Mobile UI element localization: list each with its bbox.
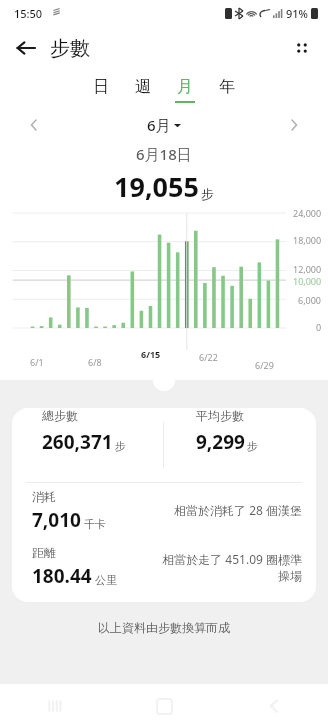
- staticText: 91%: [286, 6, 308, 21]
- staticText: 6/15: [141, 348, 161, 360]
- button[interactable]: 6月: [147, 115, 181, 135]
- button[interactable]: Back: [8, 30, 44, 66]
- staticText: 以上資料由步數換算而成: [0, 620, 328, 635]
- button[interactable]: Previous month: [20, 111, 48, 139]
- staticText: 距離: [32, 545, 56, 560]
- staticText: 0: [316, 321, 322, 333]
- staticText: 週: [135, 77, 151, 97]
- button[interactable]: More options: [284, 30, 320, 66]
- staticText: 步: [115, 439, 126, 453]
- staticText: 6/1: [30, 356, 44, 368]
- staticText: 步數: [50, 36, 90, 61]
- staticText: 6月18日: [136, 144, 192, 164]
- staticText: 9,299: [196, 429, 245, 455]
- staticText: 24,000: [293, 207, 322, 219]
- staticText: 步: [201, 186, 214, 202]
- button[interactable]: 日: [80, 70, 122, 110]
- staticText: 年: [219, 77, 235, 97]
- staticText: 19,055: [114, 168, 199, 205]
- button[interactable]: 月: [164, 70, 206, 110]
- staticText: 12,000: [293, 263, 322, 275]
- staticText: 180.44: [32, 563, 92, 589]
- staticText: 6/29: [255, 359, 274, 371]
- staticText: 相當於消耗了 28 個漢堡: [152, 502, 302, 518]
- staticText: 相當於走了 451.09 圈標準操場: [162, 551, 302, 584]
- staticText: 6/8: [88, 356, 102, 368]
- staticText: 6/22: [199, 351, 218, 363]
- staticText: 260,371: [42, 429, 113, 455]
- staticText: 消耗: [32, 489, 56, 504]
- staticText: 10,000: [293, 275, 322, 287]
- staticText: 15:50: [14, 6, 43, 21]
- staticText: 6,000: [298, 294, 322, 306]
- staticText: 日: [93, 77, 109, 97]
- staticText: 步: [247, 439, 258, 453]
- button[interactable]: Next month: [280, 111, 308, 139]
- staticText: 平均步數: [196, 408, 244, 423]
- staticText: 6月: [147, 115, 171, 135]
- button[interactable]: 年: [206, 70, 248, 110]
- staticText: 7,010: [32, 507, 81, 533]
- staticText: 公里: [95, 573, 117, 587]
- staticText: 總步數: [42, 408, 78, 423]
- staticText: 18,000: [293, 234, 322, 246]
- staticText: 千卡: [84, 517, 106, 531]
- staticText: 月: [177, 77, 193, 97]
- button[interactable]: 週: [122, 70, 164, 110]
